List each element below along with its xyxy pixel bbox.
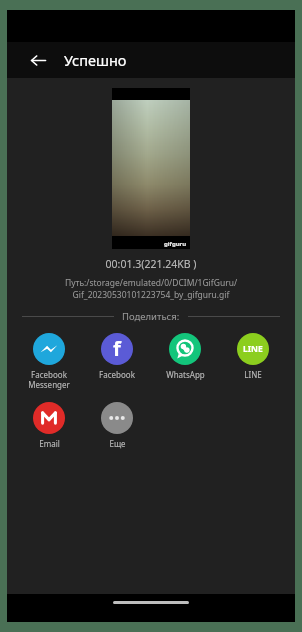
staticText: f: [113, 335, 121, 362]
staticText: gifguru: [164, 240, 187, 248]
button[interactable]: f: [83, 332, 151, 381]
button[interactable]: WhatsApp: [151, 332, 219, 381]
button[interactable]: Еще: [83, 401, 151, 450]
staticText: Facebook Messenger: [28, 369, 70, 390]
button[interactable]: LINE: [219, 332, 287, 381]
staticText: WhatsApp: [166, 369, 205, 380]
button[interactable]: Back: [25, 47, 51, 73]
staticText: Еще: [109, 438, 126, 449]
button[interactable]: Facebook Messenger: [15, 332, 83, 391]
staticText: Facebook: [99, 369, 135, 380]
staticText: LINE: [244, 369, 262, 380]
staticText: LINE: [243, 343, 263, 355]
button[interactable]: Email: [15, 401, 83, 450]
staticText: Поделиться:: [122, 310, 180, 323]
staticText: Путь:/storage/emulated/0/DCIM/1GifGuru/ …: [19, 277, 283, 301]
staticText: 00:01.3(221.24KB ): [7, 257, 295, 271]
staticText: Email: [39, 438, 60, 449]
staticText: Успешно: [64, 50, 127, 70]
